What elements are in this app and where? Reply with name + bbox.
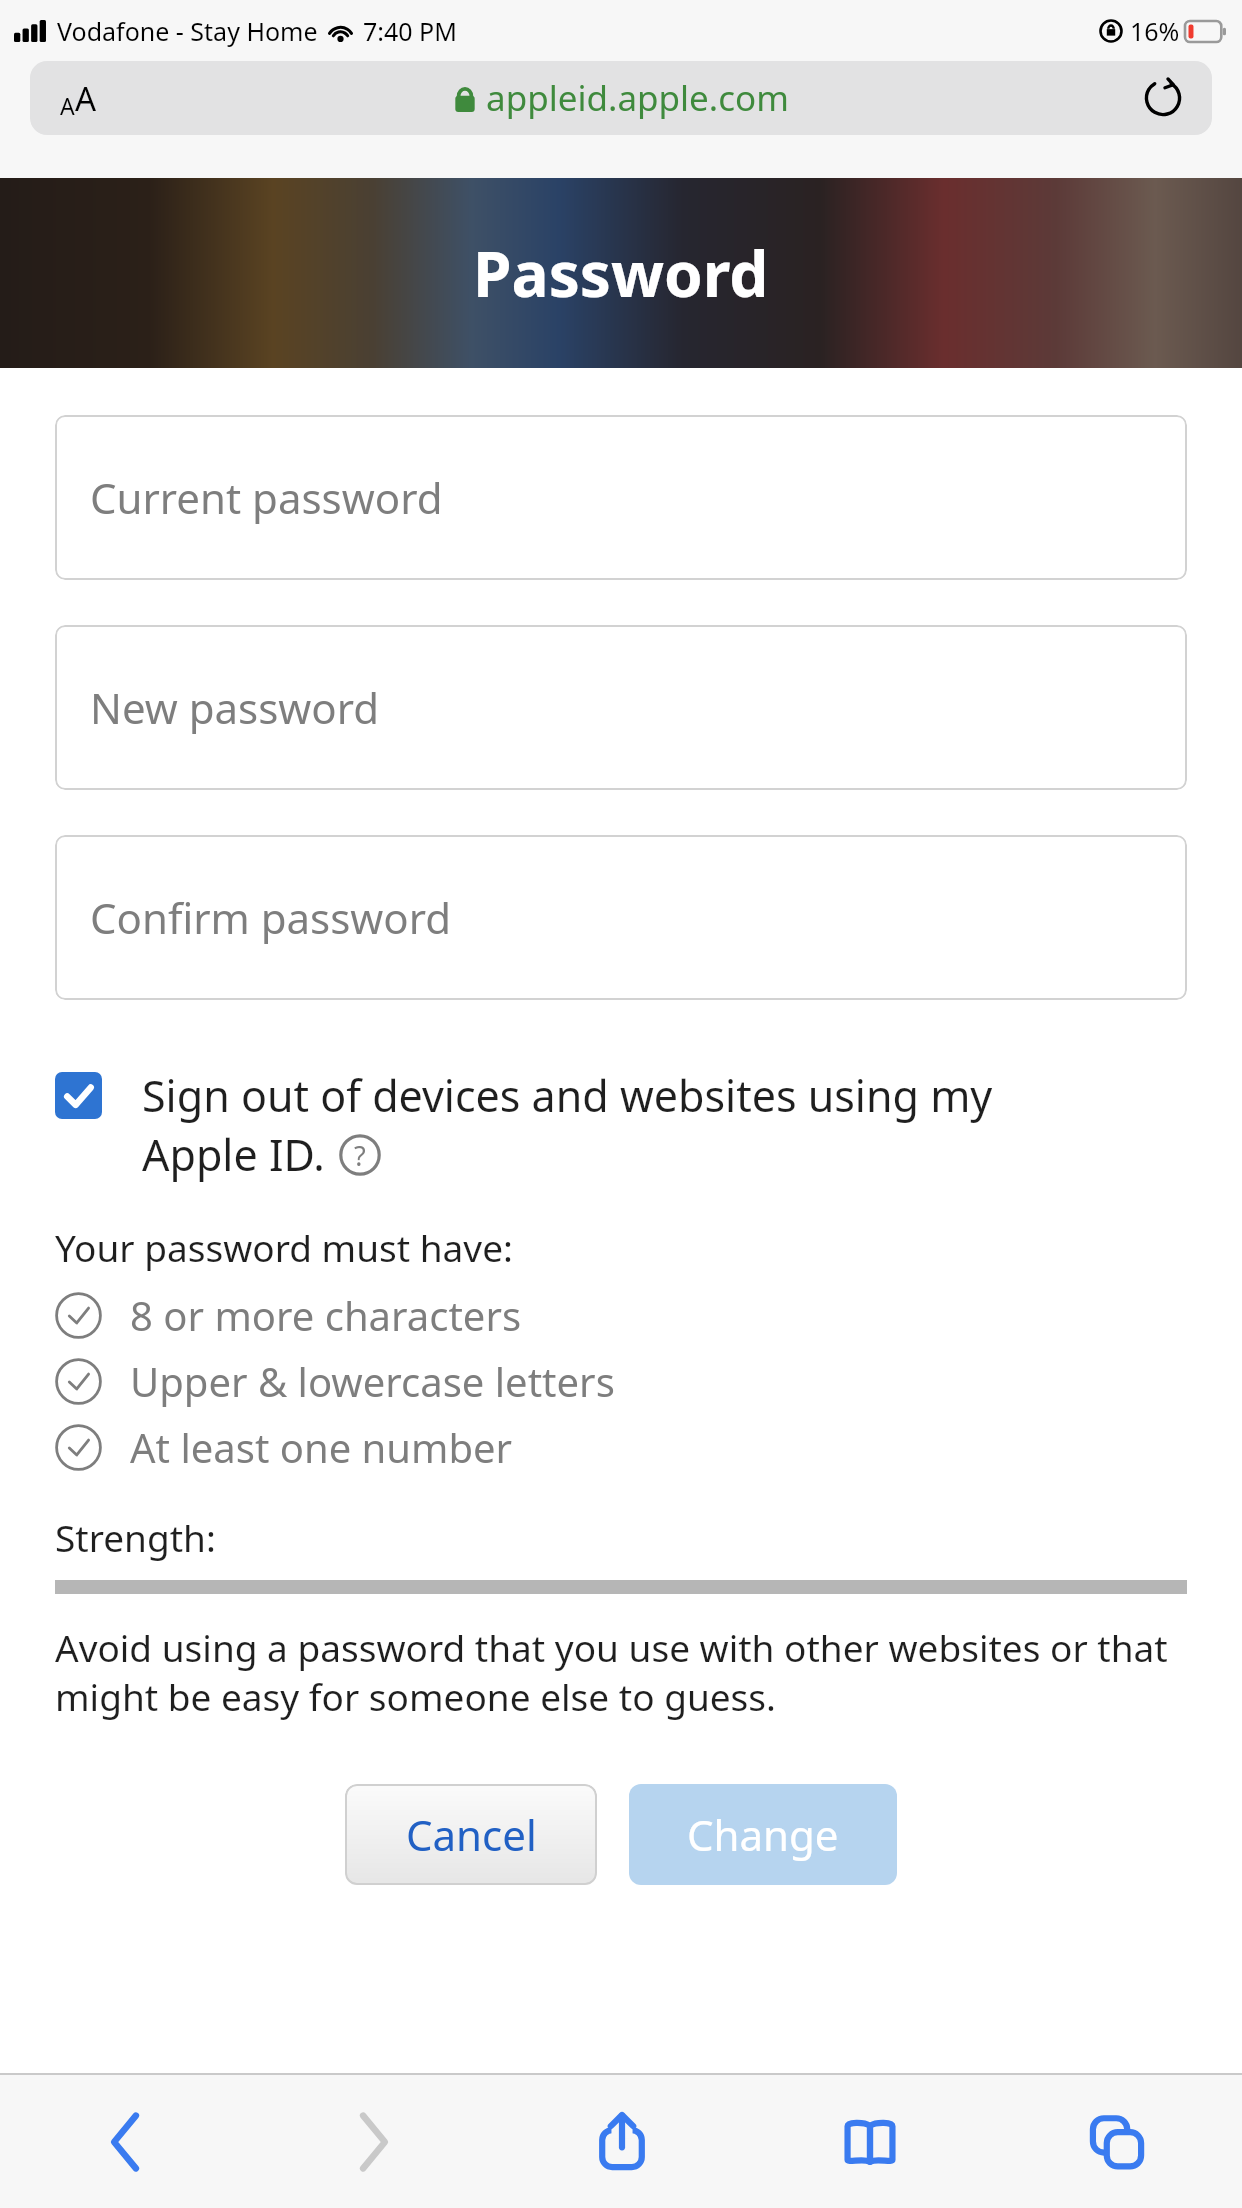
staticText: Current password (90, 469, 443, 526)
button[interactable]: Text size options (30, 61, 1212, 135)
staticText: Cancel (406, 1806, 537, 1863)
button[interactable]: Tabs (994, 2075, 1242, 2208)
staticText: Apple ID. (142, 1125, 325, 1184)
button[interactable]: Confirm password (55, 835, 1187, 1000)
staticText: 16% (1130, 14, 1180, 48)
button[interactable]: Reload page (1140, 75, 1186, 121)
button[interactable]: Text size options (60, 76, 97, 121)
staticText: appleid.apple.com (486, 74, 789, 122)
staticText: Your password must have: (55, 1222, 513, 1272)
button[interactable]: New password (55, 625, 1187, 790)
staticText: Sign out of devices and websites using m… (142, 1066, 993, 1125)
button[interactable]: Sign out of devices and websites using m… (55, 1066, 1187, 1184)
staticText: At least one number (130, 1420, 513, 1474)
staticText: Password (473, 231, 769, 315)
button[interactable]: Back (0, 2075, 249, 2208)
staticText: Vodafone - Stay Home (57, 14, 318, 48)
staticText: 7:40 PM (363, 14, 457, 48)
staticText: ? (354, 1137, 366, 1174)
staticText: Confirm password (90, 889, 452, 946)
staticText: Strength: (55, 1512, 216, 1562)
button[interactable]: Bookmarks (746, 2075, 994, 2208)
staticText: A (75, 76, 97, 121)
staticText: Change (687, 1806, 839, 1863)
button[interactable]: Change (629, 1784, 897, 1885)
button[interactable]: Share (498, 2075, 746, 2208)
button[interactable]: More information (339, 1134, 381, 1176)
staticText: A (60, 90, 75, 121)
staticText: Upper & lowercase letters (130, 1354, 615, 1408)
button[interactable]: Cancel (345, 1784, 597, 1885)
staticText: New password (90, 679, 380, 736)
button[interactable]: Forward (249, 2075, 498, 2208)
staticText: 8 or more characters (130, 1288, 522, 1342)
button[interactable]: Current password (55, 415, 1187, 580)
staticText: Avoid using a password that you use with… (55, 1622, 1187, 1722)
